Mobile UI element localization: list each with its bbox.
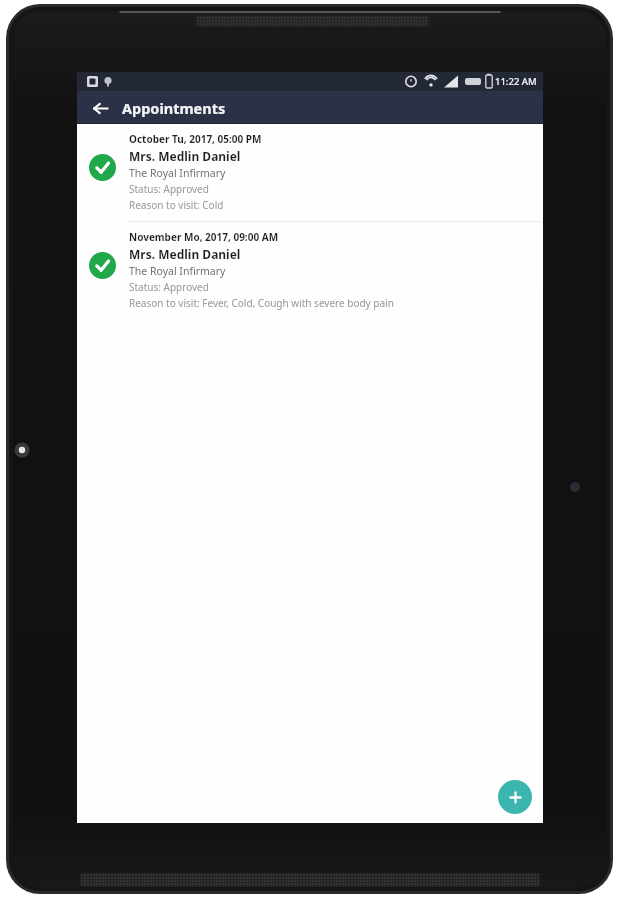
button[interactable]: Add appointment xyxy=(498,780,532,814)
staticText: Status: Approved xyxy=(129,280,209,294)
staticText: Appointments xyxy=(122,98,226,118)
staticText: 11:22 AM xyxy=(495,75,537,88)
staticText: Mrs. Medlin Daniel xyxy=(129,148,241,164)
staticText: The Royal Infirmary xyxy=(129,264,226,278)
staticText: Mrs. Medlin Daniel xyxy=(129,246,241,262)
staticText: Reason to visit: Fever, Cold, Cough with… xyxy=(129,296,394,310)
staticText: The Royal Infirmary xyxy=(129,166,226,180)
staticText: November Mo, 2017, 09:00 AM xyxy=(129,230,279,244)
button[interactable]: November Mo, 2017, 09:00 AM xyxy=(77,222,543,319)
button[interactable]: Back xyxy=(85,93,115,123)
staticText: October Tu, 2017, 05:00 PM xyxy=(129,132,262,146)
button[interactable]: October Tu, 2017, 05:00 PM xyxy=(77,124,543,221)
staticText: Status: Approved xyxy=(129,182,209,196)
staticText: Reason to visit: Cold xyxy=(129,198,224,212)
